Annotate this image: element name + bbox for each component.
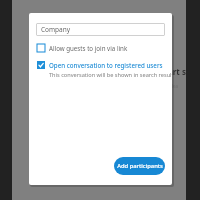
staticText: ollea [168,83,179,89]
button[interactable]: Company [36,23,165,36]
staticText: Open conversation to registered users [49,61,163,69]
staticText: Allow guests to join via link [49,44,128,52]
other: Open conversation to registered users ch… [37,61,45,69]
other: Allow guests to join via link checkbox [37,44,45,52]
staticText: Add participants [117,162,163,170]
staticText: art s [168,66,186,77]
button[interactable]: Allow guests to join via link checkbox [37,42,165,54]
button[interactable]: Add participants [114,157,165,175]
staticText: This conversation will be shown in searc… [49,71,172,79]
button[interactable]: Open conversation to registered users ch… [37,59,165,71]
staticText: Company [41,25,71,34]
